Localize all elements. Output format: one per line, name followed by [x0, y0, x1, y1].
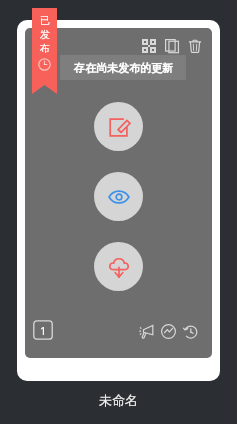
button[interactable]: Scan code	[17, 20, 220, 381]
button[interactable]: Published	[32, 8, 57, 94]
button[interactable]: Edit	[94, 102, 143, 151]
button[interactable]: Preview	[94, 172, 143, 221]
staticText: 存在尚未发布的更新	[74, 61, 173, 75]
button[interactable]: Scan code	[137, 34, 160, 57]
staticText: 未命名	[99, 392, 138, 408]
button[interactable]: Download	[94, 242, 143, 291]
button[interactable]: Delete	[183, 34, 206, 57]
staticText: 发	[40, 28, 50, 41]
button[interactable]: Analytics	[157, 320, 179, 342]
button[interactable]: Promote	[135, 320, 157, 342]
button[interactable]: 1	[33, 320, 53, 340]
staticText: 1	[40, 323, 47, 338]
button[interactable]: History	[179, 320, 201, 342]
button[interactable]: 存在尚未发布的更新	[60, 55, 186, 80]
button[interactable]: Copy	[160, 34, 183, 57]
staticText: 布	[40, 42, 50, 55]
staticText: 已	[40, 14, 50, 27]
